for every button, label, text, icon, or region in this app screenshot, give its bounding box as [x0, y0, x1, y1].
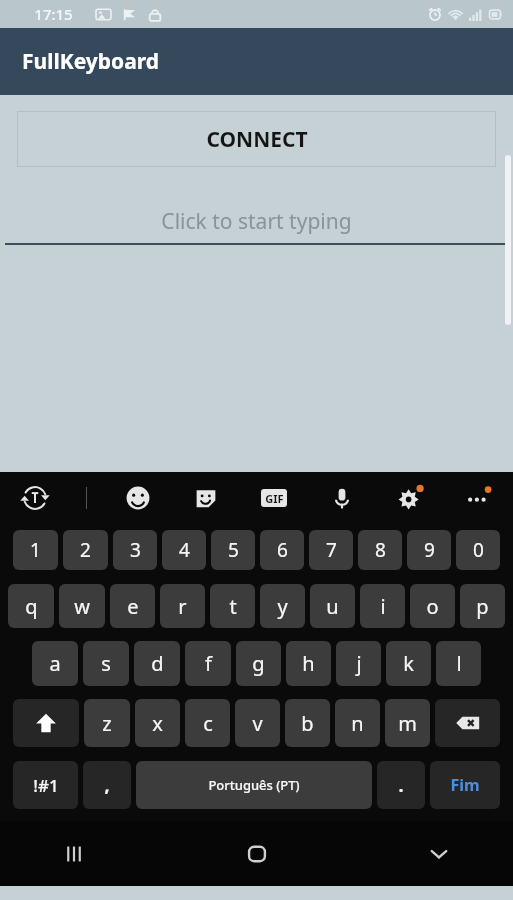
button[interactable]: , [83, 761, 131, 809]
staticText: l [456, 650, 462, 677]
staticText: Fim [450, 774, 480, 796]
staticText: 6 [277, 537, 288, 563]
staticText: . [398, 773, 404, 798]
button[interactable]: Home [233, 830, 281, 878]
button[interactable]: Recent apps [50, 830, 98, 878]
button[interactable]: Emoji [121, 481, 155, 515]
button[interactable]: Translate [18, 481, 52, 515]
staticText: 3 [130, 537, 141, 563]
button[interactable]: 7 [309, 530, 353, 570]
staticText: o [426, 593, 439, 620]
staticText: g [252, 650, 265, 677]
staticText: m [398, 710, 417, 737]
button[interactable]: . [377, 761, 425, 809]
staticText: 17:15 [34, 4, 73, 24]
button[interactable]: More options [461, 481, 495, 515]
staticText: Click to start typing [5, 207, 508, 236]
staticText: , [104, 773, 110, 798]
button[interactable]: f [185, 641, 231, 686]
staticText: 2 [80, 537, 91, 563]
button[interactable]: GIF [257, 481, 291, 515]
staticText: c [203, 710, 213, 737]
button[interactable]: m [385, 699, 430, 747]
button[interactable]: k [386, 641, 431, 686]
button[interactable]: y [260, 584, 305, 628]
staticText: w [74, 593, 90, 620]
button[interactable]: 4 [162, 530, 206, 570]
button[interactable]: x [135, 699, 180, 747]
button[interactable]: a [32, 641, 78, 686]
staticText: FullKeyboard [22, 47, 159, 76]
button[interactable]: o [410, 584, 455, 628]
staticText: 7 [326, 537, 337, 563]
staticText: i [380, 593, 386, 620]
staticText: GIF [265, 491, 284, 506]
staticText: n [351, 710, 364, 737]
button[interactable]: 3 [113, 530, 157, 570]
button[interactable]: l [436, 641, 481, 686]
button[interactable]: 1 [13, 530, 58, 570]
staticText: 8 [375, 537, 386, 563]
button[interactable]: 8 [358, 530, 402, 570]
staticText: 4 [179, 537, 190, 563]
button[interactable]: p [460, 584, 505, 628]
staticText: a [49, 650, 61, 677]
staticText: CONNECT [206, 125, 308, 154]
button[interactable]: 5 [211, 530, 255, 570]
button[interactable]: Hide keyboard [415, 830, 463, 878]
button[interactable]: !#1 [13, 761, 78, 809]
button[interactable]: g [236, 641, 281, 686]
staticText: s [101, 650, 111, 677]
button[interactable]: 0 [456, 530, 500, 570]
button[interactable]: c [185, 699, 230, 747]
staticText: h [302, 650, 315, 677]
button[interactable]: 9 [407, 530, 451, 570]
staticText: u [326, 593, 339, 620]
button[interactable]: Fim [430, 761, 500, 809]
button[interactable]: Shift [13, 699, 79, 747]
staticText: f [205, 650, 212, 677]
button[interactable]: Settings [393, 481, 427, 515]
staticText: d [151, 650, 164, 677]
button[interactable]: u [310, 584, 355, 628]
staticText: v [252, 710, 263, 737]
button[interactable]: 2 [63, 530, 108, 570]
button[interactable]: v [235, 699, 280, 747]
staticText: t [229, 593, 237, 620]
button[interactable]: i [360, 584, 405, 628]
button[interactable]: h [286, 641, 331, 686]
button[interactable]: Português (PT) [136, 761, 372, 809]
button[interactable]: j [336, 641, 381, 686]
button[interactable]: Backspace [435, 699, 500, 747]
button[interactable]: CONNECT [17, 111, 496, 167]
button[interactable]: FullKeyboard [0, 28, 513, 95]
staticText: r [178, 593, 187, 620]
button[interactable]: t [210, 584, 255, 628]
button[interactable]: Click to start typing [5, 199, 508, 243]
staticText: Português (PT) [208, 776, 300, 794]
staticText: j [356, 650, 362, 677]
staticText: e [127, 593, 139, 620]
staticText: y [277, 593, 288, 620]
button[interactable]: Stickers [189, 481, 223, 515]
button[interactable]: Voice input [325, 481, 359, 515]
button[interactable]: n [335, 699, 380, 747]
button[interactable]: q [8, 584, 54, 628]
button[interactable]: d [134, 641, 180, 686]
button[interactable]: b [285, 699, 330, 747]
staticText: k [403, 650, 414, 677]
staticText: x [152, 710, 163, 737]
button[interactable]: z [84, 699, 130, 747]
staticText: 1 [30, 537, 41, 563]
button[interactable]: e [110, 584, 155, 628]
staticText: 5 [228, 537, 239, 563]
button[interactable]: s [83, 641, 129, 686]
staticText: b [301, 710, 314, 737]
button[interactable]: 6 [260, 530, 304, 570]
staticText: q [25, 593, 38, 620]
staticText: p [476, 593, 489, 620]
staticText: z [102, 710, 112, 737]
button[interactable]: r [160, 584, 205, 628]
staticText: 0 [473, 537, 484, 563]
button[interactable]: w [59, 584, 105, 628]
